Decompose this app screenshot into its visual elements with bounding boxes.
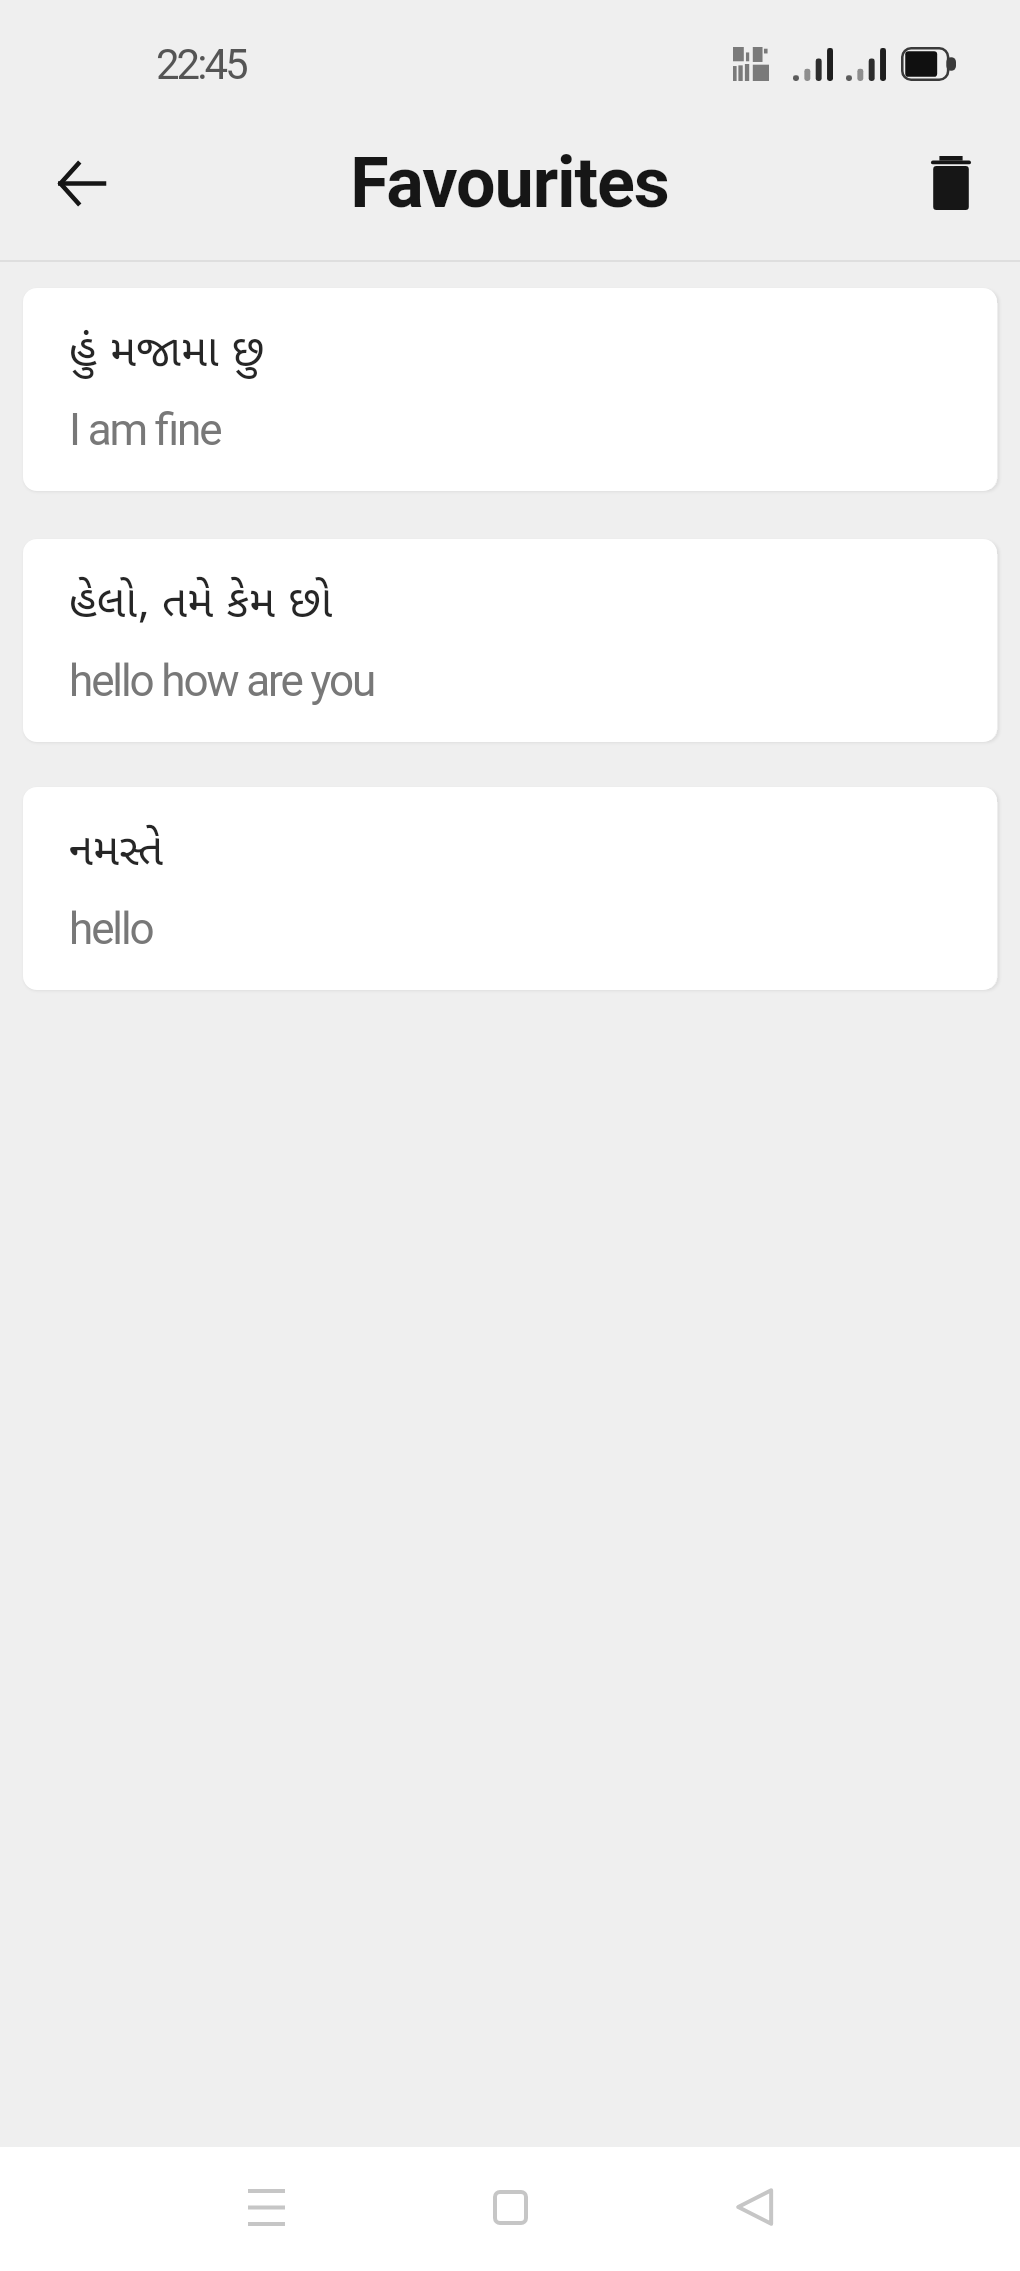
staticText: Favourites — [350, 142, 669, 224]
staticText: હું મજામા છુ — [69, 319, 265, 379]
button[interactable]: હેલો, તમે કેમ છો — [23, 539, 997, 742]
button[interactable]: Home — [440, 2146, 580, 2268]
button[interactable]: Back — [684, 2146, 824, 2268]
staticText: 22:45 — [156, 40, 246, 89]
staticText: હેલો, તમે કેમ છો — [69, 570, 333, 630]
staticText: hello — [69, 903, 153, 955]
staticText: નમસ્તે — [69, 818, 164, 878]
staticText: I am fine — [69, 404, 221, 456]
button[interactable]: Back — [19, 121, 143, 245]
button[interactable]: Delete all favourites — [889, 121, 1013, 245]
button[interactable]: નમસ્તે — [23, 787, 997, 990]
button[interactable]: હું મજામા છુ — [23, 288, 997, 491]
button[interactable]: Recent apps — [196, 2146, 336, 2268]
staticText: hello how are you — [69, 655, 375, 707]
